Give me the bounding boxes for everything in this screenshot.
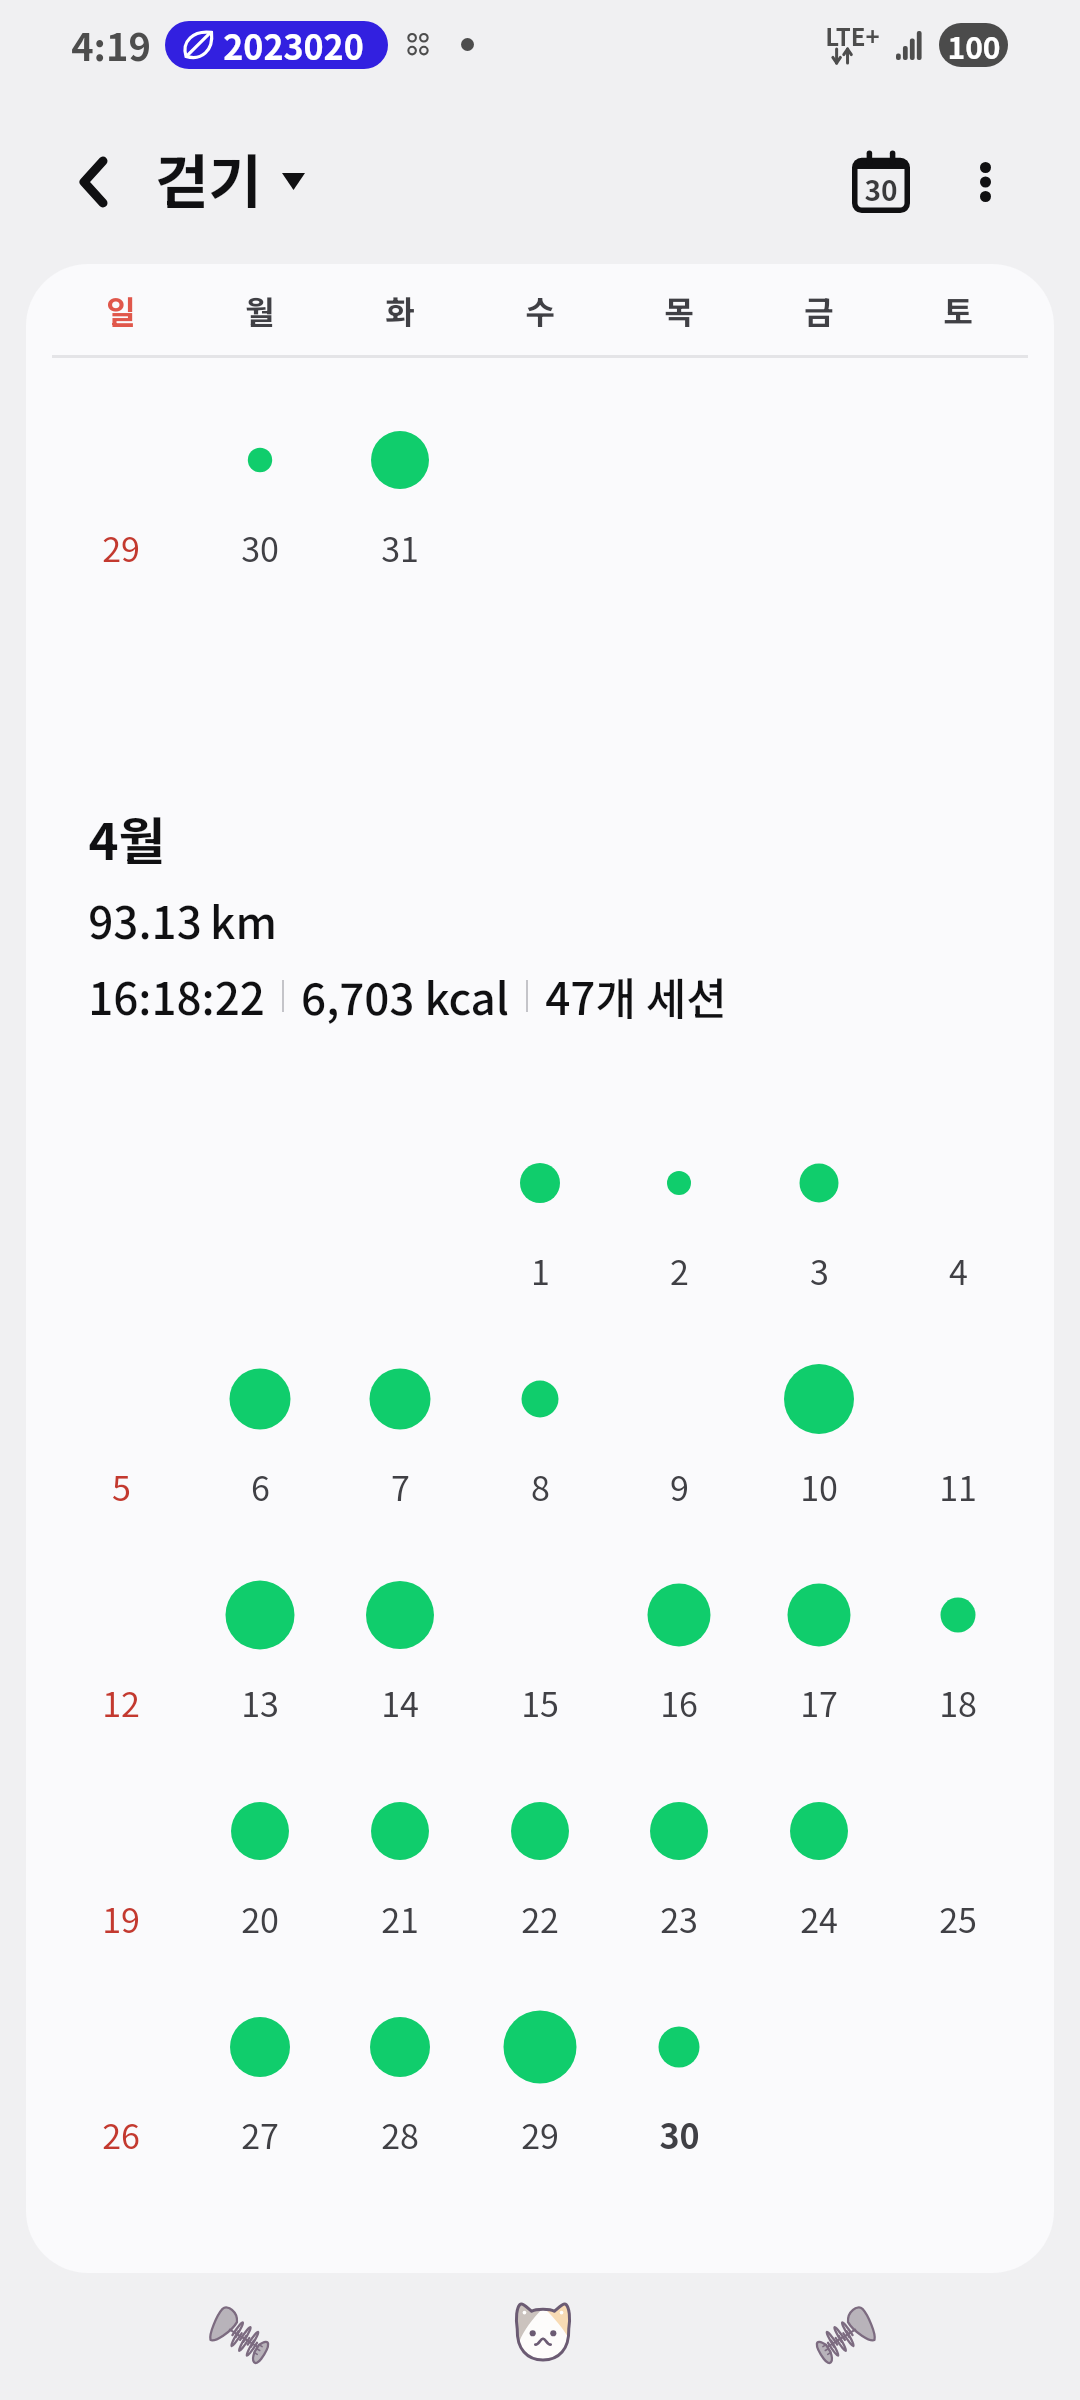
staticText: 수 bbox=[525, 287, 555, 333]
button[interactable]: 5 bbox=[57, 1356, 185, 1528]
staticText: 화 bbox=[385, 287, 415, 333]
staticText: LTE+ bbox=[825, 18, 880, 53]
button[interactable]: 10 bbox=[755, 1356, 883, 1528]
button[interactable]: Home bbox=[443, 2271, 643, 2399]
staticText: 6,703 kcal bbox=[301, 964, 509, 1028]
button[interactable]: 9 bbox=[615, 1356, 743, 1528]
staticText: 20 bbox=[241, 1894, 279, 1943]
staticText: 걷기 bbox=[155, 136, 262, 220]
button[interactable]: 2 bbox=[615, 1140, 743, 1312]
button[interactable]: Recent apps bbox=[140, 2272, 340, 2400]
staticText: 21 bbox=[381, 1894, 419, 1943]
button[interactable]: 16 bbox=[615, 1572, 743, 1744]
staticText: 19 bbox=[102, 1894, 140, 1943]
button[interactable]: 11 bbox=[894, 1356, 1022, 1528]
button[interactable]: 3 bbox=[755, 1140, 883, 1312]
button[interactable]: 12 bbox=[57, 1572, 185, 1744]
staticText: 30 bbox=[659, 2110, 700, 2159]
staticText: 월 bbox=[245, 287, 275, 333]
button[interactable]: 18 bbox=[894, 1572, 1022, 1744]
button[interactable]: 25 bbox=[894, 1788, 1022, 1960]
staticText: 25 bbox=[939, 1894, 977, 1943]
staticText: 47개 세션 bbox=[545, 964, 727, 1028]
staticText: 4:19 bbox=[71, 17, 151, 72]
button[interactable]: 29 bbox=[57, 417, 185, 589]
staticText: 9 bbox=[670, 1462, 689, 1511]
button[interactable]: 22 bbox=[476, 1788, 604, 1960]
button[interactable]: 7 bbox=[336, 1356, 464, 1528]
button[interactable]: Back bbox=[45, 134, 141, 230]
staticText: 26 bbox=[102, 2110, 140, 2159]
button[interactable]: 24 bbox=[755, 1788, 883, 1960]
staticText: 12 bbox=[102, 1678, 140, 1727]
staticText: 13 bbox=[241, 1678, 279, 1727]
staticText: 토 bbox=[943, 287, 973, 333]
button[interactable]: 29 bbox=[476, 2004, 604, 2176]
button[interactable]: 30 bbox=[196, 417, 324, 589]
staticText: 24 bbox=[800, 1894, 838, 1943]
button[interactable]: 27 bbox=[196, 2004, 324, 2176]
button[interactable]: 17 bbox=[755, 1572, 883, 1744]
button[interactable]: 20 bbox=[196, 1788, 324, 1960]
staticText: 28 bbox=[381, 2110, 419, 2159]
staticText: 16 bbox=[660, 1678, 698, 1727]
staticText: 15 bbox=[521, 1678, 559, 1727]
staticText: 23 bbox=[660, 1894, 698, 1943]
button[interactable]: 걷기 bbox=[155, 136, 315, 220]
staticText: km bbox=[210, 888, 277, 952]
staticText: 30 bbox=[864, 169, 898, 210]
staticText: 29 bbox=[102, 523, 140, 572]
staticText: 10 bbox=[800, 1462, 838, 1511]
staticText: 일 bbox=[106, 287, 136, 333]
staticText: 14 bbox=[381, 1678, 419, 1727]
button[interactable]: 13 bbox=[196, 1572, 324, 1744]
button[interactable]: 28 bbox=[336, 2004, 464, 2176]
staticText: 22 bbox=[521, 1894, 559, 1943]
staticText: 4 bbox=[949, 1246, 968, 1295]
button[interactable]: 26 bbox=[57, 2004, 185, 2176]
button[interactable]: 14 bbox=[336, 1572, 464, 1744]
button[interactable]: 31 bbox=[336, 417, 464, 589]
button[interactable]: More options bbox=[935, 132, 1035, 232]
staticText: 31 bbox=[381, 523, 419, 572]
staticText: 2 bbox=[670, 1246, 689, 1295]
staticText: 18 bbox=[939, 1678, 977, 1727]
staticText: 7 bbox=[391, 1462, 410, 1511]
staticText: 29 bbox=[521, 2110, 559, 2159]
staticText: 93.13 bbox=[88, 888, 202, 952]
staticText: 5 bbox=[112, 1462, 131, 1511]
button[interactable]: 4 bbox=[894, 1140, 1022, 1312]
button[interactable]: Back bbox=[745, 2272, 945, 2400]
staticText: 30 bbox=[241, 523, 279, 572]
button[interactable]: 19 bbox=[57, 1788, 185, 1960]
staticText: 17 bbox=[800, 1678, 838, 1727]
staticText: 8 bbox=[531, 1462, 550, 1511]
staticText: 금 bbox=[804, 287, 834, 333]
staticText: 목 bbox=[664, 287, 694, 333]
staticText: 100 bbox=[947, 24, 1001, 67]
button[interactable]: 23 bbox=[615, 1788, 743, 1960]
button[interactable]: 30 bbox=[615, 2004, 743, 2176]
button[interactable]: 15 bbox=[476, 1572, 604, 1744]
staticText: 3 bbox=[810, 1246, 829, 1295]
staticText: 2023020 bbox=[223, 21, 364, 69]
button[interactable]: 21 bbox=[336, 1788, 464, 1960]
staticText: 16:18:22 bbox=[88, 964, 265, 1028]
button[interactable]: Calendar bbox=[831, 132, 931, 232]
button[interactable]: 8 bbox=[476, 1356, 604, 1528]
button[interactable]: 1 bbox=[476, 1140, 604, 1312]
staticText: 1 bbox=[531, 1246, 550, 1295]
button[interactable]: 6 bbox=[196, 1356, 324, 1528]
staticText: 11 bbox=[939, 1462, 977, 1511]
staticText: 4월 bbox=[88, 801, 166, 875]
staticText: 27 bbox=[241, 2110, 279, 2159]
staticText: 6 bbox=[251, 1462, 270, 1511]
